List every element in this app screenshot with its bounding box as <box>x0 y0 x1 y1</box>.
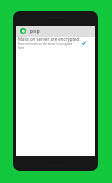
button[interactable]: p≡p <box>16 26 95 37</box>
staticText: Mails on server are encrypted <box>18 36 75 42</box>
button[interactable]: Mails on server are encrypted <box>18 37 93 51</box>
staticText: Store sent mails on the server in encryp… <box>18 42 75 50</box>
button[interactable]: Enabled <box>82 41 86 45</box>
staticText: p≡p <box>30 28 40 34</box>
